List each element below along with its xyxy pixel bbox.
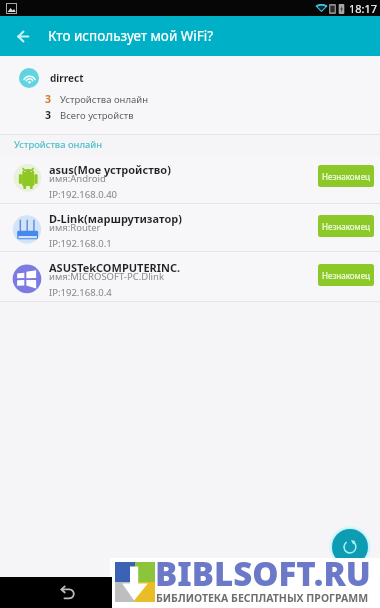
button[interactable]: Незнакомец [318, 165, 374, 187]
staticText: D-Link(маршрутизатор) [49, 211, 182, 226]
button[interactable]: asus(Мое устройство) [0, 155, 380, 204]
staticText: 3 [45, 92, 52, 106]
staticText: Незнакомец [322, 171, 370, 182]
staticText: имя:MICROSOFT-PC.Dlink [49, 270, 164, 283]
staticText: Кто использует мой WiFi? [48, 27, 214, 45]
button[interactable]: Back [0, 16, 42, 56]
staticText: asus(Мое устройство) [49, 162, 171, 177]
staticText: Незнакомец [322, 221, 370, 232]
staticText: BIBLSOFT.RU [155, 551, 371, 596]
button[interactable]: Refresh [332, 529, 368, 565]
staticText: имя:Router [49, 221, 101, 234]
staticText: ASUSTekCOMPUTERINC. [49, 260, 181, 275]
staticText: имя:Android [49, 172, 106, 185]
staticText: dirrect [50, 71, 84, 85]
button[interactable]: Back [58, 583, 77, 602]
button[interactable]: ASUSTekCOMPUTERINC. [0, 252, 380, 302]
staticText: 18:17 [349, 1, 378, 16]
staticText: IP:192.168.0.1 [49, 237, 112, 250]
button[interactable]: D-Link(маршрутизатор) [0, 204, 380, 252]
staticText: Устройства онлайн [60, 93, 148, 106]
staticText: IP:192.168.0.40 [49, 188, 118, 201]
staticText: 3 [45, 108, 52, 122]
button[interactable]: Незнакомец [318, 215, 374, 237]
staticText: БИБЛИОТЕКА БЕСПЛАТНЫХ ПРОГРАММ [156, 591, 369, 605]
staticText: Устройства онлайн [14, 138, 102, 151]
staticText: IP:192.168.0.4 [49, 286, 112, 299]
button[interactable]: Незнакомец [318, 264, 374, 286]
staticText: Всего устройств [60, 109, 134, 122]
staticText: Незнакомец [322, 270, 370, 281]
